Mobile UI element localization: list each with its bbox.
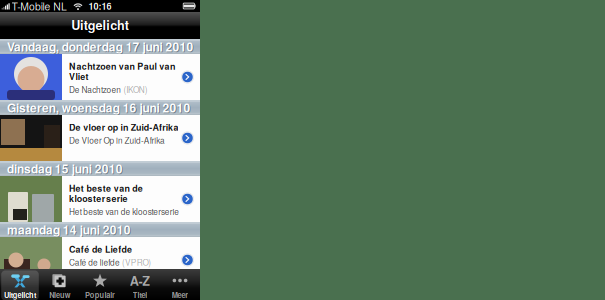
- staticText: Café de liefde: [69, 256, 120, 268]
- staticText: 10:16: [88, 0, 111, 12]
- button[interactable]: Populair: [80, 269, 120, 300]
- button[interactable]: Uitgelicht: [0, 269, 40, 300]
- staticText: A-Z: [130, 271, 150, 289]
- staticText: Het beste van de kloosterserie: [69, 205, 179, 217]
- staticText: (VPRO): [122, 256, 151, 268]
- staticText: De Vloer Op in Zuid-Afrika: [69, 134, 165, 146]
- staticText: Uitgelicht: [71, 16, 129, 34]
- button[interactable]: Nachtzoen van Paul van Vliet: [0, 54, 200, 100]
- staticText: Gisteren, woensdag 16 juni 2010: [7, 99, 190, 116]
- staticText: Gisteren, woensdag 16 juni 2010: [8, 100, 191, 117]
- staticText: Nachtzoen van Paul van Vliet: [69, 61, 175, 81]
- staticText: Vandaag, donderdag 17 juni 2010: [8, 39, 194, 56]
- staticText: Uitgelicht: [4, 289, 36, 300]
- staticText: T-Mobile NL: [11, 0, 67, 13]
- staticText: Het beste van de kloosterserie: [69, 183, 143, 203]
- staticText: Populair: [85, 289, 115, 300]
- staticText: Nieuw: [49, 289, 71, 300]
- button[interactable]: De vloer op in Zuid-Afrika: [0, 115, 200, 161]
- button[interactable]: Meer: [160, 269, 200, 300]
- button[interactable]: Het beste van de kloosterserie: [0, 176, 200, 222]
- staticText: dinsdag 15 juni 2010: [7, 160, 123, 177]
- staticText: Café de Liefde: [69, 244, 132, 254]
- staticText: Vandaag, donderdag 17 juni 2010: [7, 38, 193, 55]
- staticText: Meer: [172, 289, 188, 300]
- button[interactable]: Café de Liefde: [0, 237, 200, 283]
- staticText: dinsdag 15 juni 2010: [8, 161, 123, 178]
- staticText: maandag 14 juni 2010: [8, 222, 131, 239]
- button[interactable]: A-Z: [120, 269, 160, 300]
- staticText: Titel: [133, 289, 147, 300]
- staticText: De vloer op in Zuid-Afrika: [69, 122, 178, 132]
- staticText: De Nachtzoen: [69, 83, 121, 95]
- button[interactable]: Nieuw: [40, 269, 80, 300]
- staticText: maandag 14 juni 2010: [7, 221, 131, 238]
- staticText: (IKON): [123, 83, 148, 95]
